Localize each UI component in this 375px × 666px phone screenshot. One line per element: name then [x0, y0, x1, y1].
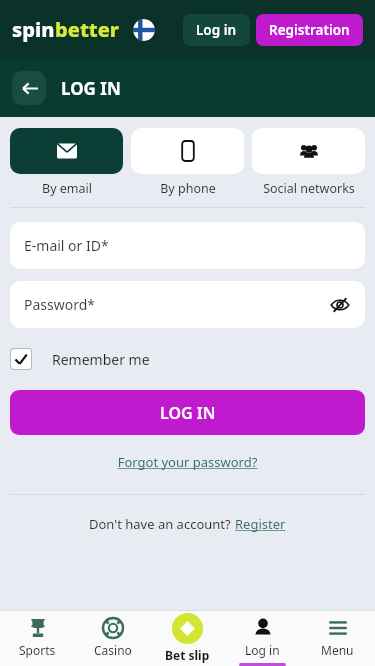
staticText: Sports: [19, 642, 56, 658]
staticText: By email: [42, 180, 92, 197]
staticText: Social networks: [263, 180, 355, 197]
button[interactable]: Language Finland: [133, 19, 155, 41]
button[interactable]: By email: [10, 128, 123, 197]
staticText: Menu: [321, 642, 354, 658]
staticText: Log in: [245, 642, 280, 658]
button[interactable]: Remember me: [10, 348, 150, 370]
button[interactable]: Back: [12, 71, 46, 105]
button[interactable]: Forgot your password?: [0, 453, 375, 471]
button[interactable]: E-mail or ID*: [10, 222, 365, 269]
button[interactable]: Password*: [10, 281, 365, 328]
staticText: Don't have an account?: [89, 515, 235, 533]
button[interactable]: spin: [12, 16, 119, 43]
staticText: Remember me: [52, 350, 150, 369]
button[interactable]: Sports: [0, 610, 75, 666]
staticText: spin: [12, 16, 55, 43]
button[interactable]: Social networks: [252, 128, 365, 197]
button[interactable]: Bet slip: [150, 610, 225, 666]
button[interactable]: Register: [235, 515, 286, 533]
staticText: Register: [235, 515, 286, 533]
staticText: Bet slip: [165, 647, 210, 663]
button[interactable]: Casino: [75, 610, 150, 666]
button[interactable]: Log in: [183, 14, 250, 46]
staticText: LOG IN: [160, 402, 216, 424]
staticText: Password*: [24, 295, 96, 314]
staticText: Log in: [196, 21, 237, 39]
staticText: Casino: [94, 642, 132, 658]
button[interactable]: Log in: [225, 610, 300, 666]
button[interactable]: Menu: [300, 610, 375, 666]
staticText: By phone: [160, 180, 216, 197]
staticText: LOG IN: [61, 77, 121, 100]
staticText: better: [55, 16, 119, 43]
button[interactable]: LOG IN: [10, 390, 365, 435]
staticText: E-mail or ID*: [24, 236, 109, 255]
staticText: Registration: [269, 21, 350, 39]
button[interactable]: Show password: [327, 292, 353, 318]
button[interactable]: Registration: [256, 14, 363, 46]
button[interactable]: By phone: [131, 128, 244, 197]
